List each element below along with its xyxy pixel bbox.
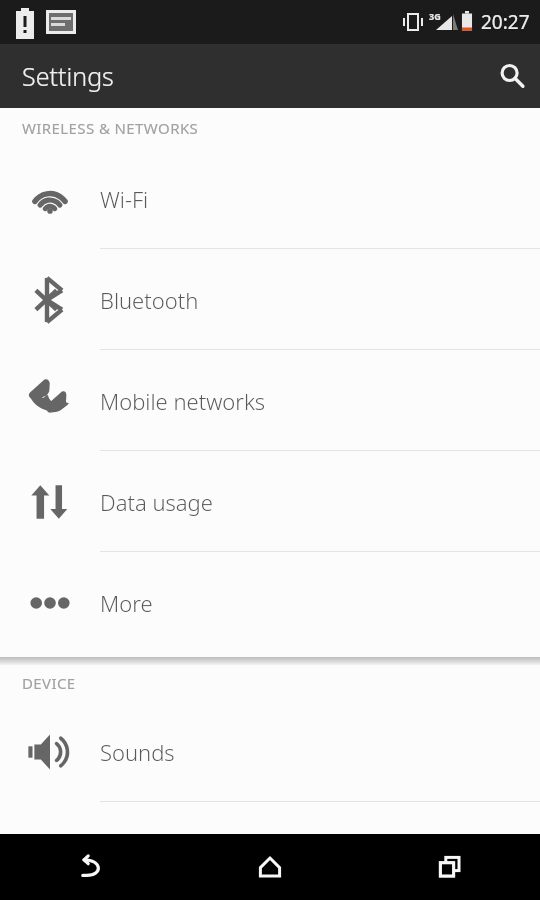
button[interactable]: Recents <box>360 834 540 900</box>
staticText: Bluetooth <box>100 285 199 315</box>
staticText: Settings <box>22 59 114 93</box>
staticText: 3G <box>429 10 441 22</box>
staticText: Mobile networks <box>100 386 266 416</box>
button[interactable]: Back <box>0 834 180 900</box>
button[interactable]: Data usage <box>0 451 540 552</box>
staticText: WIRELESS & NETWORKS <box>22 118 199 138</box>
staticText: 20:27 <box>481 9 530 35</box>
button[interactable]: Search <box>484 48 540 104</box>
button[interactable]: Wi-Fi <box>0 148 540 249</box>
button[interactable]: Bluetooth <box>0 249 540 350</box>
staticText: Wi-Fi <box>100 184 149 214</box>
button[interactable]: Mobile networks <box>0 350 540 451</box>
button[interactable]: Home <box>180 834 360 900</box>
staticText: DEVICE <box>22 673 76 693</box>
button[interactable]: More <box>0 552 540 653</box>
staticText: Data usage <box>100 487 213 517</box>
staticText: More <box>100 588 153 618</box>
button[interactable]: Sounds <box>0 701 540 802</box>
staticText: Sounds <box>100 737 175 767</box>
